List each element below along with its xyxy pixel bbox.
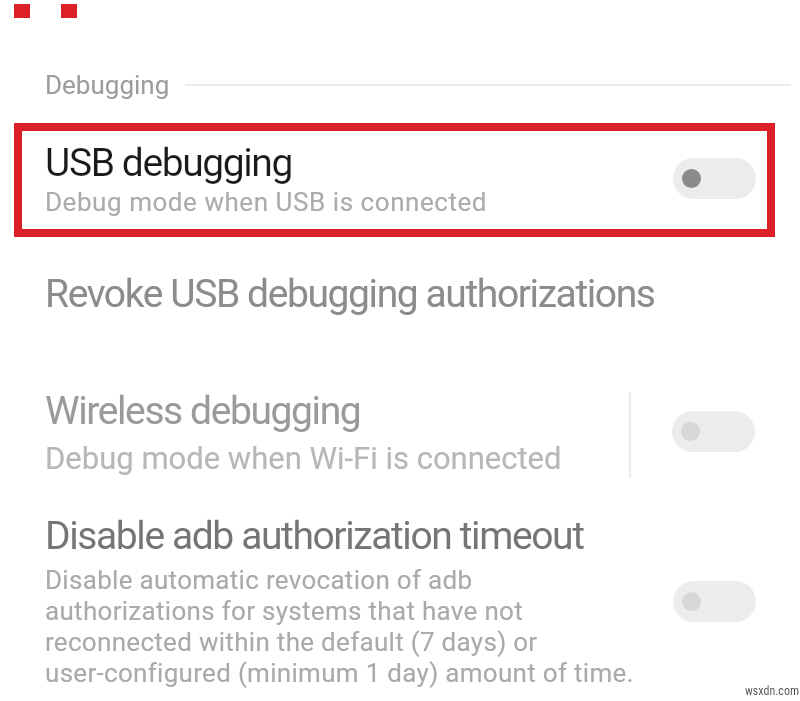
button[interactable] (673, 581, 756, 622)
staticText: USB debugging (45, 140, 293, 186)
staticText: authorizations for systems that have not (45, 596, 523, 626)
button[interactable]: Disable adb authorization timeout (0, 505, 800, 695)
staticText: Disable adb authorization timeout (45, 513, 584, 559)
button[interactable] (673, 158, 756, 199)
button[interactable] (672, 411, 755, 452)
staticText: wsxdn.com (745, 684, 799, 698)
staticText: user-configured (minimum 1 day) amount o… (45, 658, 634, 688)
staticText: Debug mode when USB is connected (45, 187, 488, 217)
staticText: Disable automatic revocation of adb (45, 565, 473, 595)
staticText: Debug mode when Wi-Fi is connected (45, 440, 562, 476)
staticText: Wireless debugging (45, 388, 361, 434)
button[interactable]: USB debugging (0, 123, 800, 237)
staticText: reconnected within the default (7 days) … (45, 627, 538, 657)
button[interactable]: Wireless debugging (0, 383, 800, 483)
staticText: Debugging (45, 70, 170, 100)
staticText: Revoke USB debugging authorizations (45, 271, 655, 317)
button[interactable]: Revoke USB debugging authorizations (0, 258, 800, 338)
